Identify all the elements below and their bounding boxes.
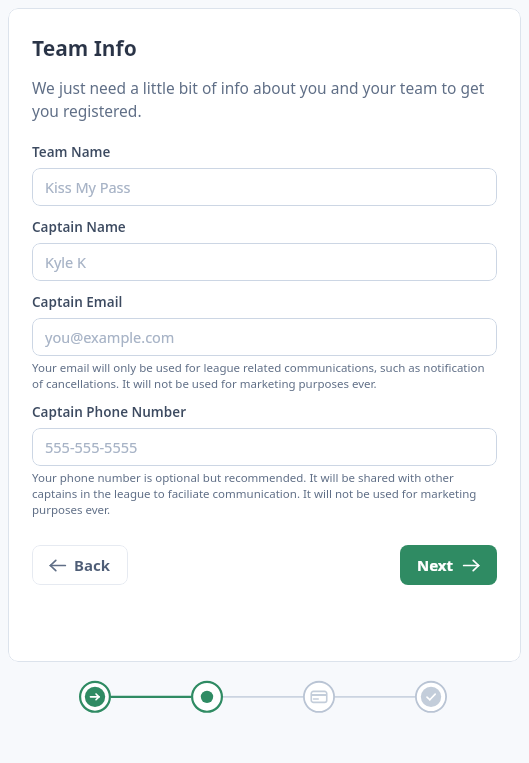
staticText: Team Info (32, 34, 137, 63)
staticText: We just need a little bit of info about … (32, 77, 497, 122)
button[interactable]: Next (400, 545, 497, 585)
staticText: you@example.com (45, 327, 175, 347)
staticText: Team Name (32, 143, 111, 161)
staticText: Back (74, 555, 111, 575)
button[interactable]: 555-555-5555 (32, 428, 497, 466)
staticText: Kyle K (45, 252, 87, 272)
staticText: Kiss My Pass (45, 177, 131, 197)
staticText: 555-555-5555 (45, 437, 138, 457)
staticText: Captain Email (32, 293, 123, 311)
button[interactable]: Kyle K (32, 243, 497, 281)
button[interactable]: you@example.com (32, 318, 497, 356)
button[interactable]: Kiss My Pass (32, 168, 497, 206)
staticText: Captain Name (32, 218, 126, 236)
staticText: Next (417, 555, 454, 575)
button[interactable]: Back (32, 545, 128, 585)
staticText: Captain Phone Number (32, 403, 187, 421)
staticText: Your phone number is optional but recomm… (32, 470, 497, 518)
staticText: Your email will only be used for league … (32, 360, 497, 392)
